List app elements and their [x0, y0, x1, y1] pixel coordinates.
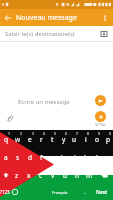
staticText: m [86, 171, 93, 180]
staticText: 2 [20, 131, 23, 136]
button[interactable]: t [47, 130, 58, 148]
staticText: t [51, 135, 54, 144]
staticText: a [4, 153, 8, 162]
button[interactable]: l [91, 148, 102, 166]
staticText: Saisir le(s) destinataire(s) [5, 30, 75, 38]
staticText: n [75, 171, 80, 180]
button[interactable]: e [24, 130, 36, 148]
button[interactable]: Attach file [4, 113, 14, 123]
staticText: q [4, 135, 8, 144]
staticText: Next [96, 189, 108, 196]
staticText: 9 [98, 131, 101, 136]
button[interactable]: o [91, 130, 102, 148]
button[interactable]: y [58, 130, 69, 148]
staticText: Nouveau message [16, 13, 77, 23]
button[interactable]: v [47, 166, 59, 184]
button[interactable]: m [83, 166, 95, 184]
staticText: 4 [43, 131, 46, 136]
staticText: l [96, 153, 98, 162]
button[interactable]: Backspace [95, 166, 113, 184]
staticText: s [16, 153, 20, 162]
button[interactable]: d [24, 148, 36, 166]
button[interactable]: z [11, 166, 23, 184]
staticText: b [63, 171, 67, 180]
staticText: u [72, 135, 77, 144]
button[interactable]: q [0, 130, 12, 148]
button[interactable]: s [12, 148, 24, 166]
staticText: 5 [54, 131, 57, 136]
button[interactable]: i [80, 130, 91, 148]
staticText: 3 [32, 131, 35, 136]
staticText: d [28, 153, 32, 162]
staticText: m [104, 153, 111, 162]
staticText: p [106, 135, 110, 144]
staticText: o [95, 135, 99, 144]
staticText: 0 [109, 131, 112, 136]
button[interactable]: Emoji [10, 184, 19, 200]
button[interactable]: a [0, 148, 12, 166]
button[interactable]: f [36, 148, 47, 166]
button[interactable]: ?123 [0, 184, 10, 200]
staticText: w [15, 135, 21, 144]
button[interactable]: j [69, 148, 80, 166]
staticText: h [61, 153, 66, 162]
staticText: i [85, 135, 87, 144]
staticText: c [39, 171, 43, 180]
button[interactable]: Choose contacts [97, 27, 110, 40]
staticText: 0/160 [95, 122, 106, 127]
staticText: . [84, 188, 86, 196]
button[interactable]: r [36, 130, 47, 148]
button[interactable]: Space [19, 184, 79, 200]
button[interactable]: b [59, 166, 71, 184]
staticText: x [27, 171, 31, 180]
staticText: f [40, 153, 43, 162]
staticText: z [15, 171, 19, 180]
button[interactable]: Send message [95, 95, 106, 106]
staticText: v [51, 171, 55, 180]
staticText: k [84, 153, 88, 162]
button[interactable]: Add attachment [95, 111, 106, 122]
button[interactable]: n [71, 166, 83, 184]
staticText: 1 [8, 131, 11, 136]
button[interactable]: c [35, 166, 47, 184]
staticText: g [51, 153, 55, 162]
button[interactable]: Back [0, 10, 16, 26]
staticText: Écrire un message [18, 98, 70, 106]
button[interactable]: x [23, 166, 35, 184]
staticText: Français [52, 190, 68, 195]
button[interactable]: h [58, 148, 69, 166]
staticText: 8 [87, 131, 90, 136]
staticText: 6 [65, 131, 68, 136]
button[interactable]: m [102, 148, 113, 166]
button[interactable]: p [102, 130, 113, 148]
button[interactable]: w [12, 130, 24, 148]
staticText: 7 [76, 131, 79, 136]
button[interactable]: Next [90, 184, 113, 200]
button[interactable]: . [79, 184, 90, 200]
staticText: r [40, 135, 43, 144]
staticText: j [74, 153, 76, 162]
staticText: y [62, 135, 66, 144]
button[interactable]: Shift [0, 166, 11, 184]
button[interactable]: g [47, 148, 58, 166]
staticText: ?123 [0, 189, 10, 195]
button[interactable]: k [80, 148, 91, 166]
staticText: e [28, 135, 32, 144]
button[interactable]: More options [97, 10, 113, 26]
button[interactable]: u [69, 130, 80, 148]
